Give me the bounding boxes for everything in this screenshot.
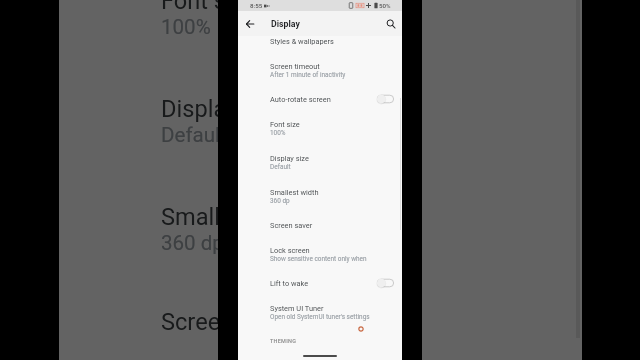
- staticText: 100%: [161, 15, 211, 39]
- button[interactable]: Screen saver: [238, 213, 402, 237]
- staticText: Show sensitive content only when unlocke…: [270, 255, 394, 263]
- staticText: 50%: [379, 2, 391, 9]
- staticText: 360 dp: [270, 197, 290, 205]
- staticText: Display: [271, 19, 300, 29]
- staticText: Display size: [161, 95, 286, 123]
- button[interactable]: Lift to wake: [238, 271, 402, 295]
- staticText: System UI Tuner: [270, 304, 324, 313]
- staticText: Default: [270, 163, 291, 171]
- staticText: THEMING: [270, 338, 297, 344]
- button[interactable]: Screen timeout: [238, 53, 402, 87]
- staticText: Auto-rotate screen: [270, 95, 331, 104]
- button[interactable]: Auto-rotate screen: [238, 87, 402, 111]
- button[interactable]: Display size: [59, 67, 582, 175]
- button[interactable]: Screen saver: [59, 283, 582, 360]
- button[interactable]: Smallest width: [238, 179, 402, 213]
- staticText: Open old SystemUI tuner's settings: [270, 313, 370, 321]
- staticText: 360 dp: [161, 231, 224, 255]
- staticText: Smallest width: [270, 188, 319, 197]
- staticText: Font size: [270, 120, 300, 129]
- staticText: Smallest width: [161, 203, 316, 231]
- button[interactable]: Font size: [59, 0, 582, 67]
- staticText: Lock screen: [270, 246, 310, 255]
- staticText: 8:55: [250, 2, 263, 9]
- button[interactable]: Navigate up: [241, 15, 258, 32]
- staticText: Font size: [161, 0, 256, 15]
- staticText: Lift to wake: [270, 279, 309, 288]
- button[interactable]: System UI Tuner: [238, 295, 402, 329]
- button[interactable]: Styles & wallpapers: [238, 29, 402, 53]
- staticText: 100%: [270, 129, 286, 137]
- staticText: After 1 minute of inactivity: [270, 71, 346, 79]
- button[interactable]: Search settings: [382, 15, 399, 32]
- staticText: Screen saver: [161, 308, 296, 336]
- staticText: Screen timeout: [270, 62, 320, 71]
- button[interactable]: Display size: [238, 145, 402, 179]
- button[interactable]: Smallest width: [59, 175, 582, 283]
- button[interactable]: Lock screen: [238, 237, 402, 271]
- button[interactable]: Font size: [238, 111, 402, 145]
- staticText: Default: [161, 123, 227, 147]
- staticText: Screen saver: [270, 221, 313, 230]
- staticText: Styles & wallpapers: [270, 37, 334, 46]
- staticText: Display size: [270, 154, 309, 163]
